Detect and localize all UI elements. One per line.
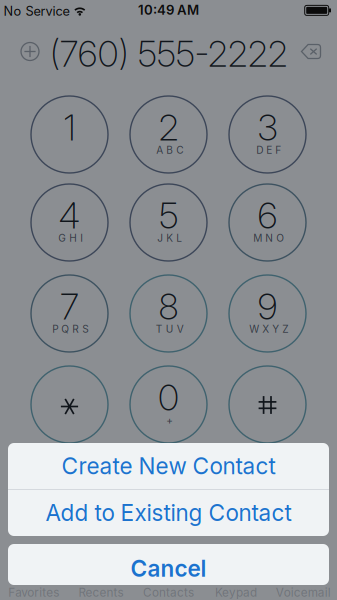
staticText: Cancel bbox=[130, 555, 206, 582]
button[interactable]: Keypad bbox=[202, 583, 270, 600]
button[interactable]: Add number bbox=[21, 42, 39, 60]
staticText: M N O bbox=[253, 232, 284, 244]
staticText: Contacts bbox=[143, 585, 194, 600]
staticText: (760) 555-2222 bbox=[50, 32, 288, 75]
staticText: 4 bbox=[58, 194, 80, 237]
staticText: Voicemail bbox=[276, 585, 331, 600]
button[interactable]: 0 bbox=[130, 366, 207, 443]
button[interactable] bbox=[31, 366, 108, 443]
button[interactable]: Delete bbox=[300, 43, 321, 59]
staticText: Keypad bbox=[215, 585, 257, 600]
button[interactable]: Create New Contact bbox=[8, 443, 329, 489]
button[interactable]: Voicemail bbox=[270, 583, 337, 600]
staticText: 0 bbox=[158, 376, 179, 419]
staticText: A B C bbox=[156, 144, 183, 156]
staticText: Create New Contact bbox=[61, 452, 275, 480]
staticText: 2 bbox=[158, 106, 178, 149]
button[interactable]: Recents bbox=[67, 583, 135, 600]
button[interactable]: Contacts bbox=[135, 583, 202, 600]
button[interactable]: 1 bbox=[31, 96, 108, 173]
staticText: Recents bbox=[79, 585, 124, 600]
button[interactable]: 2 bbox=[130, 96, 207, 173]
staticText: 5 bbox=[159, 194, 178, 237]
staticText: P Q R S bbox=[52, 323, 89, 335]
staticText: Favorites bbox=[8, 585, 59, 600]
button[interactable]: 6 bbox=[229, 184, 306, 261]
staticText: 10:49 AM bbox=[138, 2, 199, 18]
staticText: 9 bbox=[257, 285, 277, 328]
button[interactable]: 5 bbox=[130, 184, 207, 261]
staticText: T U V bbox=[156, 323, 184, 335]
button[interactable]: 9 bbox=[229, 275, 306, 352]
button[interactable]: 8 bbox=[130, 275, 207, 352]
button[interactable]: Favorites bbox=[0, 583, 67, 600]
staticText: 6 bbox=[257, 194, 277, 237]
staticText: 1 bbox=[63, 106, 75, 149]
button[interactable]: Add to Existing Contact bbox=[8, 490, 329, 536]
staticText: W X Y Z bbox=[249, 323, 288, 335]
staticText: 3 bbox=[257, 106, 277, 149]
staticText: J K L bbox=[157, 232, 182, 244]
button[interactable]: 3 bbox=[229, 96, 306, 173]
button[interactable]: 7 bbox=[31, 275, 108, 352]
staticText: + bbox=[166, 414, 173, 426]
staticText: Add to Existing Contact bbox=[45, 499, 291, 526]
staticText: 8 bbox=[158, 285, 178, 328]
staticText: G H I bbox=[58, 232, 83, 244]
staticText: D E F bbox=[256, 144, 281, 156]
button[interactable]: Cancel bbox=[8, 544, 329, 585]
button[interactable] bbox=[229, 366, 306, 443]
staticText: 7 bbox=[60, 285, 79, 328]
staticText: No Service bbox=[3, 3, 69, 19]
button[interactable]: 4 bbox=[31, 184, 108, 261]
